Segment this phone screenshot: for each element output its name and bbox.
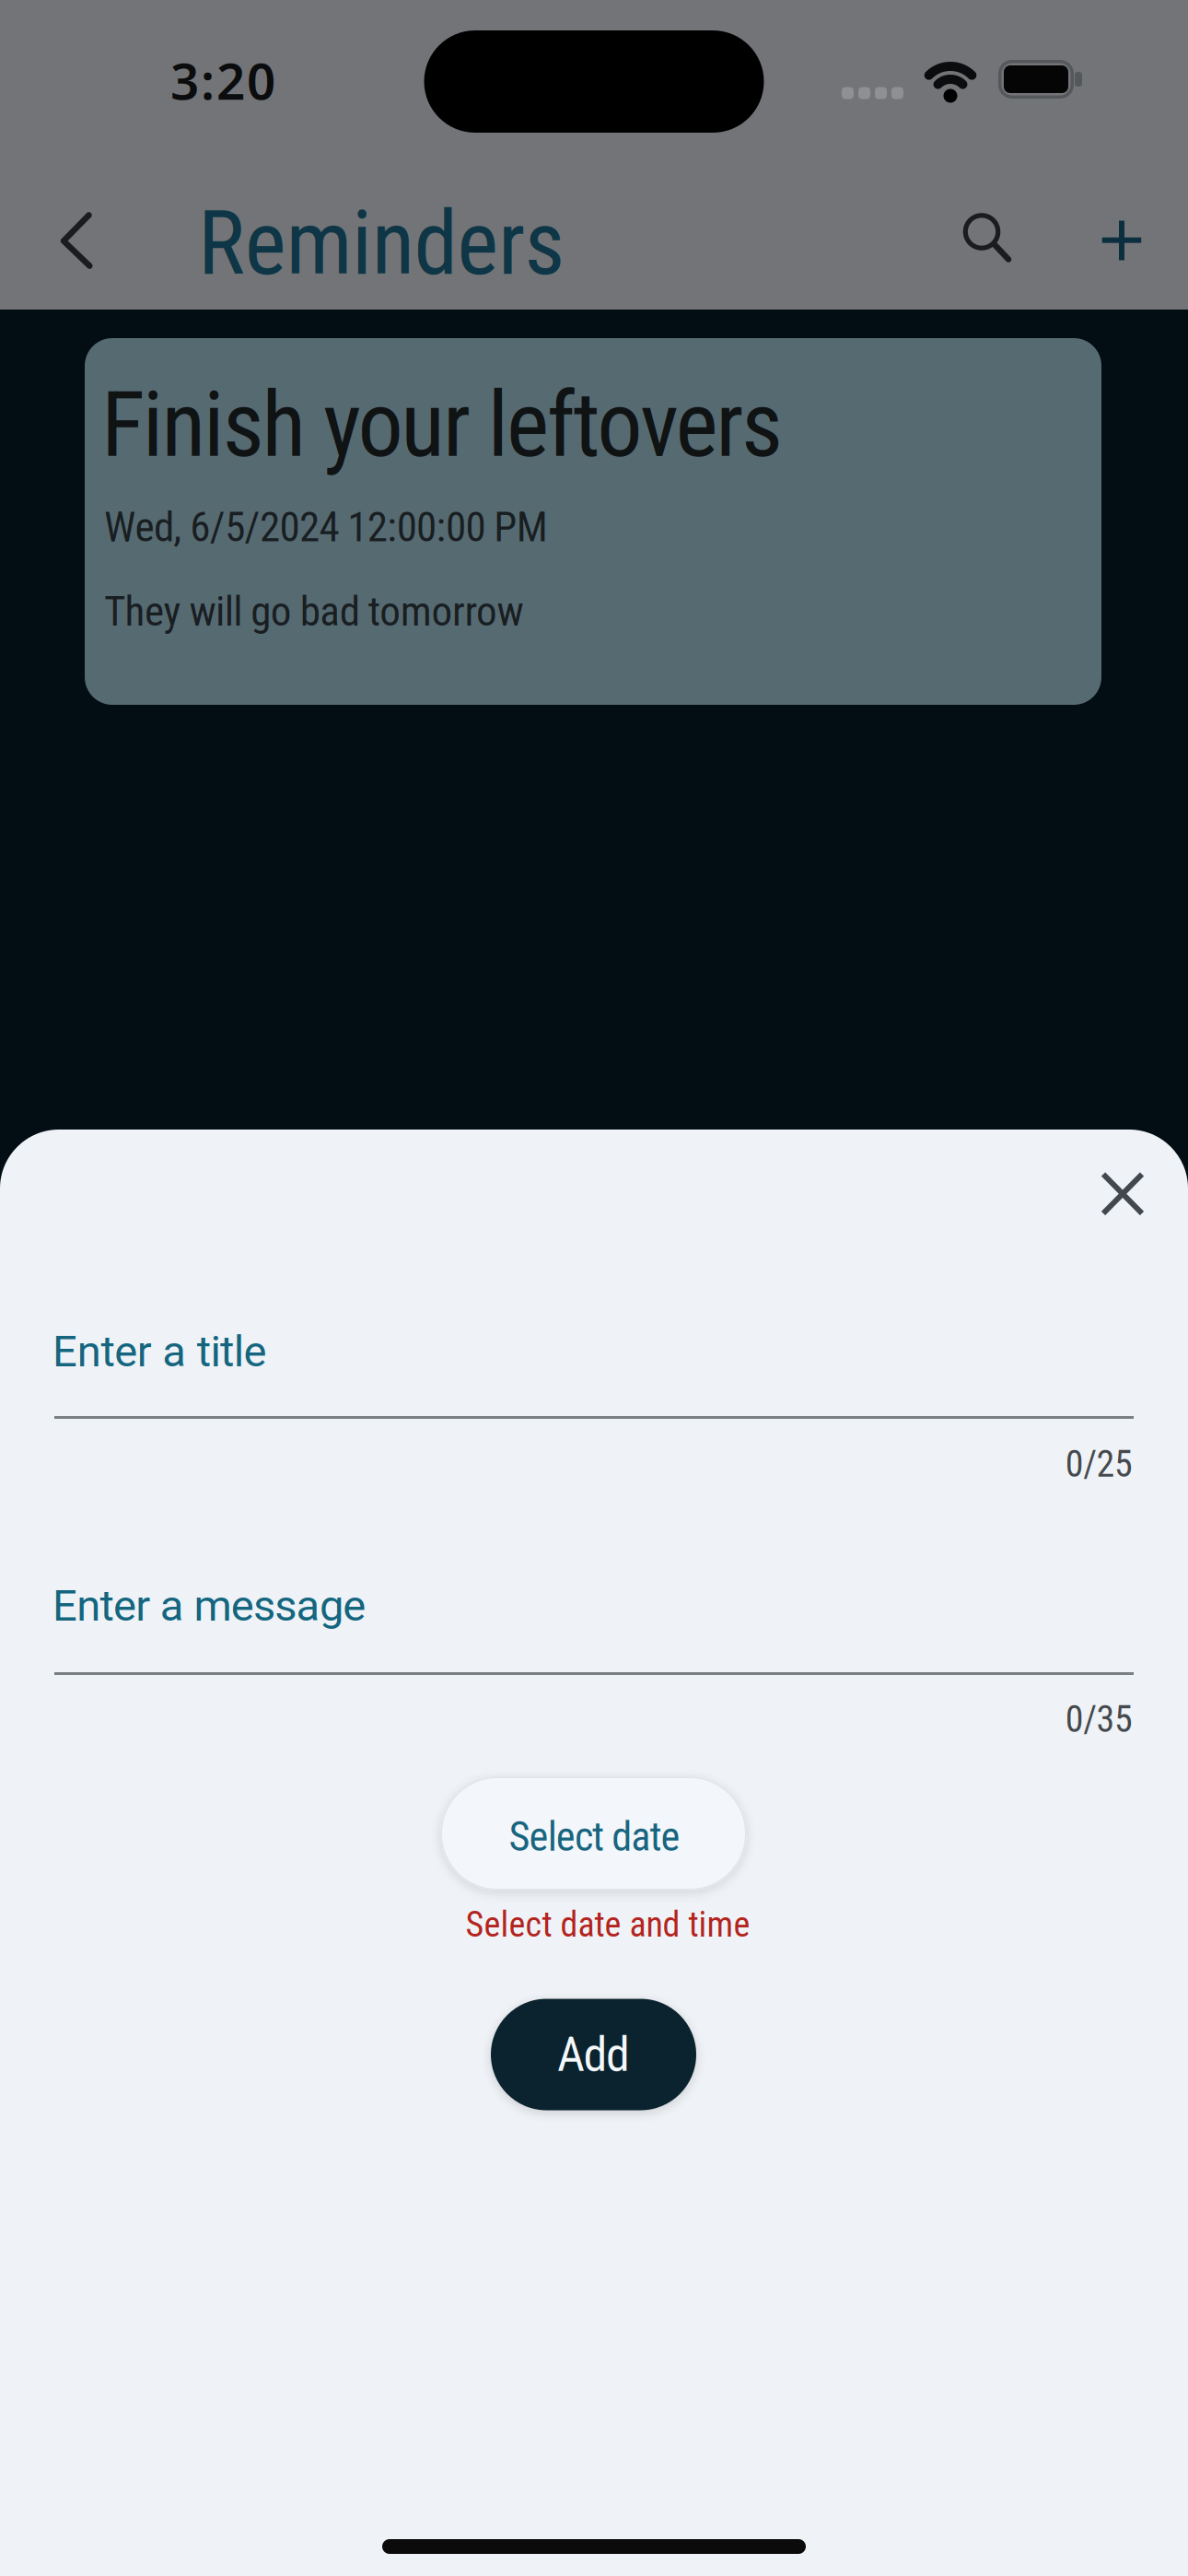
staticText: Select date [509, 1813, 680, 1861]
button[interactable]: Enter a title [54, 1305, 1134, 1419]
staticText: 3:20 [170, 47, 275, 114]
button[interactable]: Add [491, 1999, 696, 2110]
button[interactable]: Close [1097, 1168, 1148, 1219]
staticText: 0/35 [1065, 1698, 1133, 1741]
staticText: Reminders [198, 192, 565, 295]
staticText: Add [557, 2026, 630, 2083]
button[interactable]: Enter a message [54, 1561, 1134, 1675]
staticText: Enter a title [52, 1326, 267, 1377]
staticText: Wed, 6/5/2024 12:00:00 PM [104, 503, 548, 551]
staticText: Finish your leftovers [101, 372, 783, 478]
button[interactable]: Select date [440, 1776, 747, 1891]
button[interactable]: Add reminder [1098, 217, 1146, 264]
staticText: They will go bad tomorrow [104, 587, 524, 636]
staticText: Select date and time [466, 1904, 750, 1945]
staticText: Enter a message [52, 1580, 366, 1631]
staticText: 0/25 [1065, 1442, 1133, 1486]
button[interactable]: Finish your leftovers [85, 338, 1101, 705]
button[interactable]: Search [962, 213, 1012, 263]
button[interactable]: Back [57, 212, 98, 269]
